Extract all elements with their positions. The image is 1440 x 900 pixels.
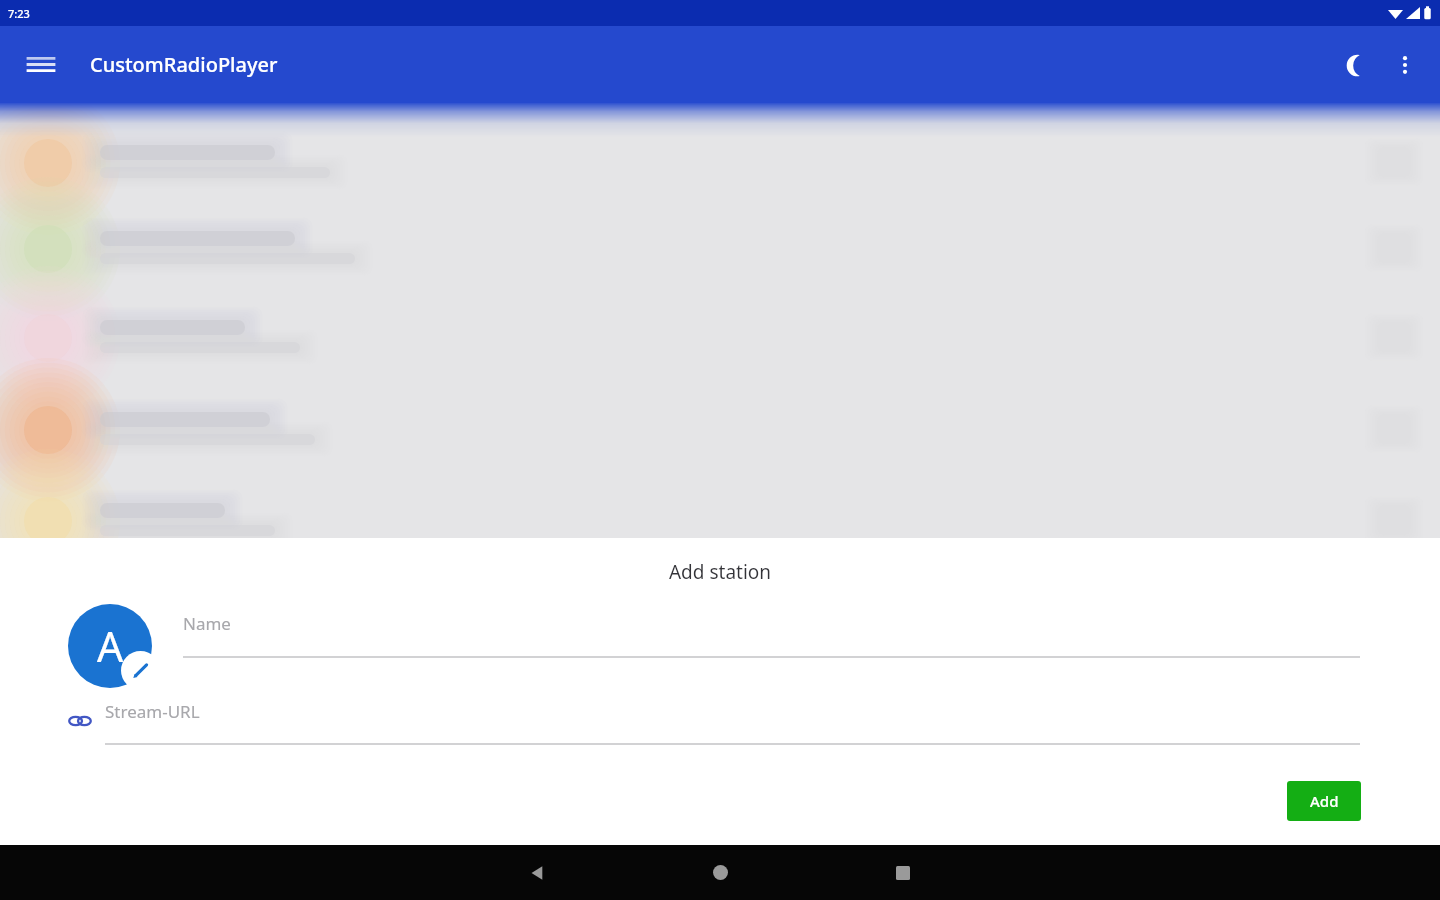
button[interactable]: Open navigation drawer xyxy=(17,41,64,88)
button[interactable]: Add xyxy=(1287,781,1361,821)
button[interactable]: Recent apps xyxy=(855,845,951,900)
button[interactable]: Stream-URL xyxy=(105,700,1360,745)
staticText: Add xyxy=(1310,791,1339,811)
button[interactable]: Name xyxy=(183,612,1360,658)
staticText: Stream-URL xyxy=(105,700,200,723)
button[interactable]: Change station icon xyxy=(68,604,160,696)
staticText: Name xyxy=(183,612,231,635)
button[interactable]: Home xyxy=(672,845,768,900)
button[interactable]: More options xyxy=(1381,41,1429,89)
staticText: Add station xyxy=(0,559,1440,585)
button[interactable]: Toggle dark mode xyxy=(1333,41,1381,89)
staticText: A xyxy=(97,618,124,674)
staticText: CustomRadioPlayer xyxy=(90,51,278,78)
button[interactable]: Back xyxy=(490,845,586,900)
staticText: 7:23 xyxy=(8,6,30,21)
